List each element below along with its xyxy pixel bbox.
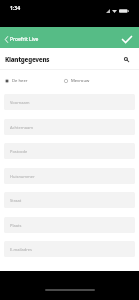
staticText: Postcode <box>10 149 28 154</box>
staticText: Plaats <box>10 223 22 228</box>
staticText: 1:34 <box>10 5 20 12</box>
staticText: Klantgegevens <box>5 55 50 63</box>
button[interactable]: Proefrit Live <box>0 34 43 45</box>
button[interactable]: Huisnummer <box>4 168 135 184</box>
staticText: E-mailadres <box>10 247 33 252</box>
button[interactable]: Straat <box>4 192 135 208</box>
button[interactable]: Mevrouw <box>64 78 90 84</box>
staticText: Achternaam <box>10 125 33 130</box>
staticText: Straat <box>10 198 22 203</box>
staticText: De heer <box>12 78 28 84</box>
button[interactable]: Postcode <box>4 143 135 159</box>
button[interactable]: Achternaam <box>4 119 135 135</box>
staticText: Mevrouw <box>71 78 90 84</box>
button[interactable]: E-mailadres <box>4 241 135 257</box>
button[interactable]: De heer <box>5 78 28 84</box>
staticText: Voornaam <box>10 100 30 105</box>
button[interactable]: Voornaam <box>4 94 135 110</box>
staticText: Proefrit Live <box>10 36 39 43</box>
button[interactable]: Save <box>118 31 135 48</box>
staticText: Huisnummer <box>10 174 35 179</box>
button[interactable]: Plaats <box>4 217 135 233</box>
button[interactable]: Search <box>119 52 133 66</box>
